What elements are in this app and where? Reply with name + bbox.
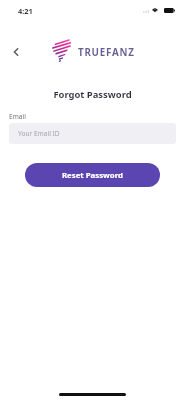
staticText: 4:21 <box>18 6 33 16</box>
staticText: Reset Password <box>62 170 123 181</box>
button[interactable]: Reset Password <box>25 163 160 187</box>
staticText: Forgot Password <box>0 88 185 101</box>
staticText: Email <box>9 112 26 121</box>
staticText: Your Email ID <box>18 129 60 138</box>
button[interactable]: Back <box>5 41 26 62</box>
staticText: TRUEFANZ <box>78 46 135 59</box>
button[interactable]: Your Email ID <box>9 123 176 144</box>
